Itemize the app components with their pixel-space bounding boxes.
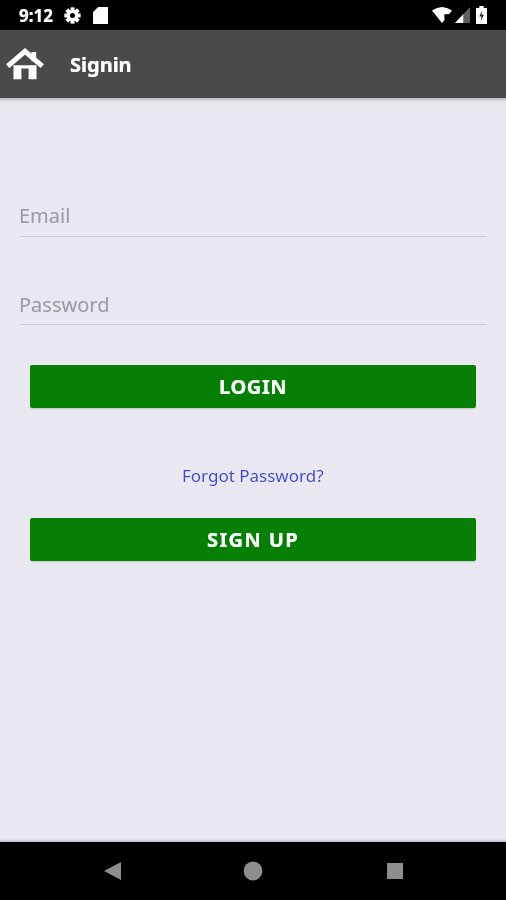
button[interactable]: LOGIN <box>30 365 476 408</box>
staticText: SIGN UP <box>207 526 300 553</box>
staticText: 9:12 <box>19 4 53 27</box>
button[interactable] <box>104 862 121 880</box>
staticText: Signin <box>70 51 132 78</box>
button[interactable]: Forgot Password? <box>182 464 324 487</box>
button[interactable] <box>7 48 43 81</box>
staticText: Password <box>19 291 110 318</box>
button[interactable] <box>243 861 263 881</box>
button[interactable]: SIGN UP <box>30 518 476 561</box>
staticText: Email <box>19 202 71 229</box>
staticText: LOGIN <box>219 373 288 400</box>
